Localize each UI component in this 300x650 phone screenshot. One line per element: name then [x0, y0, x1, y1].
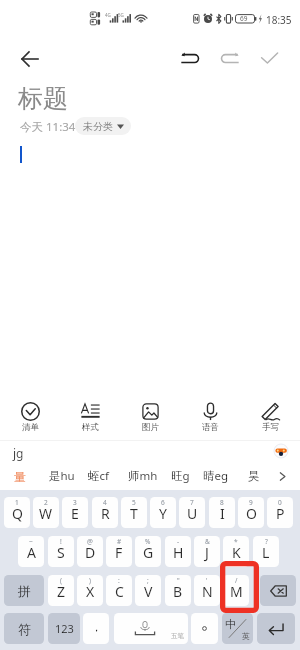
staticText: 5G	[118, 12, 124, 18]
button[interactable]: :	[106, 575, 132, 606]
button[interactable]: /	[223, 575, 249, 606]
button[interactable]: -	[165, 536, 191, 567]
button[interactable]: 0	[267, 497, 293, 528]
button[interactable]: 4	[92, 497, 118, 528]
staticText: )	[89, 576, 91, 585]
staticText: J	[205, 543, 209, 562]
button[interactable]: 6	[150, 497, 176, 528]
staticText: 标题	[18, 83, 68, 114]
staticText: 蛭cf	[88, 468, 109, 484]
button[interactable]: Back	[14, 43, 46, 75]
staticText: 样式	[82, 422, 99, 433]
staticText: ?	[265, 537, 268, 546]
staticText: /	[235, 576, 238, 585]
staticText: Q	[12, 504, 23, 523]
staticText: 6	[161, 498, 165, 507]
button[interactable]: 2	[33, 497, 59, 528]
staticText: 1	[15, 498, 19, 507]
staticText: V	[144, 582, 153, 601]
button[interactable]: '	[194, 575, 220, 606]
staticText: 3	[73, 498, 77, 507]
button[interactable]: %	[135, 536, 161, 567]
staticText: "	[177, 576, 180, 585]
button[interactable]: Enter	[257, 613, 295, 644]
button[interactable]: 9	[238, 497, 264, 528]
staticText: 五笔	[171, 632, 184, 640]
button[interactable]: 图片	[120, 396, 180, 436]
staticText: 4	[103, 498, 107, 507]
button[interactable]: 7	[179, 497, 205, 528]
staticText: D	[85, 543, 96, 562]
button[interactable]: More candidates	[272, 466, 292, 486]
button[interactable]: !	[48, 536, 74, 567]
button[interactable]: Done	[253, 43, 285, 75]
staticText: 昊	[248, 469, 260, 483]
button[interactable]: 清单	[0, 396, 60, 436]
staticText: 0	[278, 498, 282, 507]
staticText: *	[234, 537, 238, 546]
button[interactable]: 样式	[60, 396, 120, 436]
button[interactable]: 5	[121, 497, 147, 528]
button[interactable]: 语音	[180, 396, 240, 436]
button[interactable]: 手写	[240, 396, 300, 436]
staticText: N	[202, 582, 213, 601]
button[interactable]: 晴eg	[198, 466, 234, 486]
staticText: I	[220, 504, 225, 523]
staticText: 清单	[22, 422, 39, 433]
button[interactable]: #	[106, 536, 132, 567]
staticText: 4G	[105, 12, 111, 18]
button[interactable]: Emoji	[274, 444, 288, 458]
button[interactable]: &	[194, 536, 220, 567]
button[interactable]: Redo	[213, 43, 245, 75]
staticText: R	[101, 504, 110, 523]
button[interactable]: )	[77, 575, 103, 606]
button[interactable]: ;	[135, 575, 161, 606]
button[interactable]: Chinese English toggle	[222, 613, 253, 644]
button[interactable]: ~	[18, 536, 44, 567]
button[interactable]: Undo	[175, 43, 207, 75]
staticText: 旺g	[171, 468, 190, 484]
staticText: 晴eg	[203, 468, 229, 484]
button[interactable]: @	[77, 536, 103, 567]
button[interactable]: 3	[62, 497, 88, 528]
button[interactable]: 是hu	[44, 466, 80, 486]
staticText: P	[276, 504, 285, 523]
button[interactable]: 符	[4, 613, 44, 644]
button[interactable]: 师mh	[123, 466, 163, 486]
staticText: M	[230, 582, 243, 601]
staticText: #	[117, 537, 122, 546]
staticText: jg	[13, 445, 24, 461]
button[interactable]: 昊	[243, 466, 265, 486]
button[interactable]: Backspace	[260, 575, 296, 606]
staticText: C	[115, 582, 124, 601]
staticText: 5	[132, 498, 136, 507]
button[interactable]: "	[165, 575, 191, 606]
staticText: U	[187, 504, 198, 523]
staticText: 师mh	[128, 468, 158, 484]
staticText: 手写	[262, 422, 279, 433]
button[interactable]: 拼	[4, 575, 44, 606]
button[interactable]: ?	[253, 536, 279, 567]
button[interactable]	[191, 613, 218, 644]
button[interactable]: 8	[209, 497, 235, 528]
staticText: E	[71, 504, 79, 523]
staticText: 是hu	[49, 468, 75, 484]
staticText: 量	[14, 469, 26, 484]
staticText: G	[143, 543, 154, 562]
button[interactable]: *	[223, 536, 249, 567]
staticText: 符	[18, 621, 31, 637]
button[interactable]: ，	[83, 613, 109, 644]
button[interactable]: 蛭cf	[83, 466, 114, 486]
staticText: H	[173, 543, 184, 562]
button[interactable]: Space	[114, 613, 188, 644]
staticText: ，	[91, 620, 102, 634]
staticText: 未分类	[83, 120, 113, 133]
staticText: X	[86, 582, 95, 601]
staticText: T	[130, 504, 138, 523]
button[interactable]: 1	[4, 497, 30, 528]
button[interactable]: (	[48, 575, 74, 606]
button[interactable]: 旺g	[166, 466, 195, 486]
button[interactable]: 未分类	[75, 117, 131, 135]
button[interactable]: 123	[48, 613, 80, 644]
staticText: 2	[44, 498, 48, 507]
